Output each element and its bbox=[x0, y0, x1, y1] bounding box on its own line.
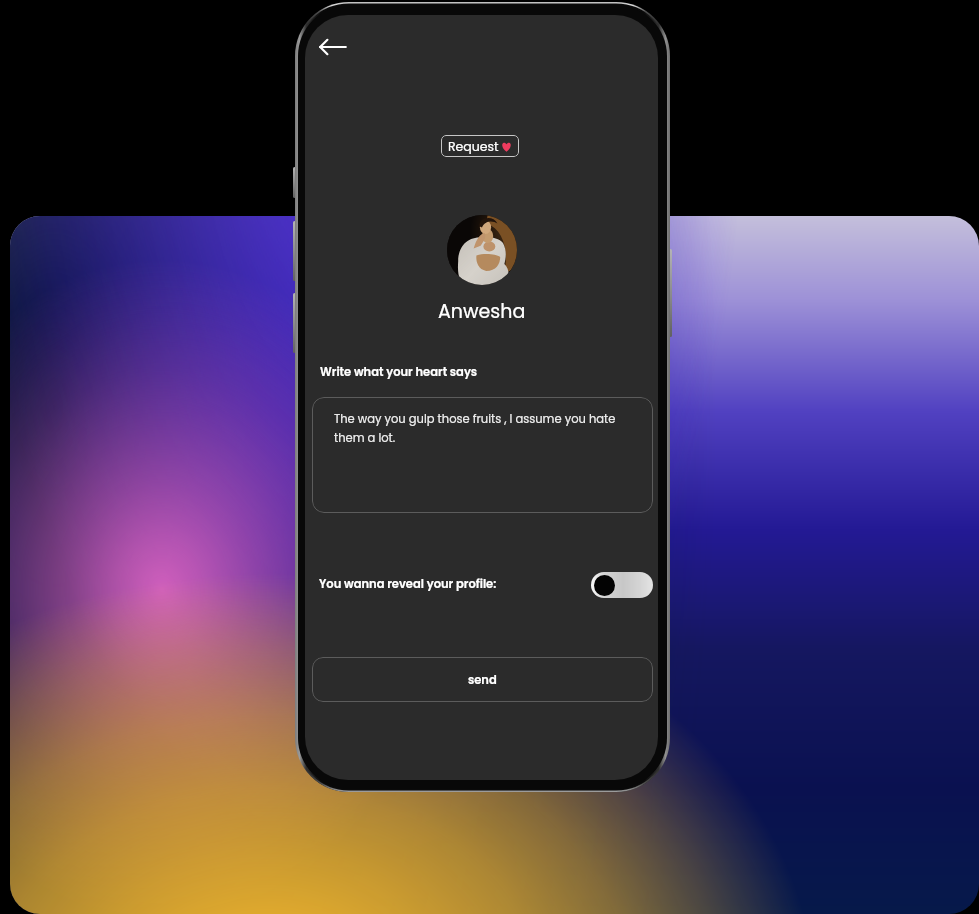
button[interactable]: send bbox=[312, 657, 653, 702]
staticText: send bbox=[468, 672, 497, 688]
staticText: Write what your heart says bbox=[320, 364, 478, 380]
button[interactable]: Back bbox=[313, 27, 353, 67]
staticText: You wanna reveal your profile: bbox=[319, 576, 497, 592]
staticText: The way you gulp those fruits , I assume… bbox=[334, 411, 639, 446]
staticText: Request bbox=[448, 138, 499, 155]
button[interactable]: The way you gulp those fruits , I assume… bbox=[312, 397, 653, 513]
button[interactable]: Request bbox=[441, 135, 519, 157]
button[interactable]: Reveal your profile toggle bbox=[591, 572, 653, 598]
staticText: Anwesha bbox=[438, 298, 526, 325]
